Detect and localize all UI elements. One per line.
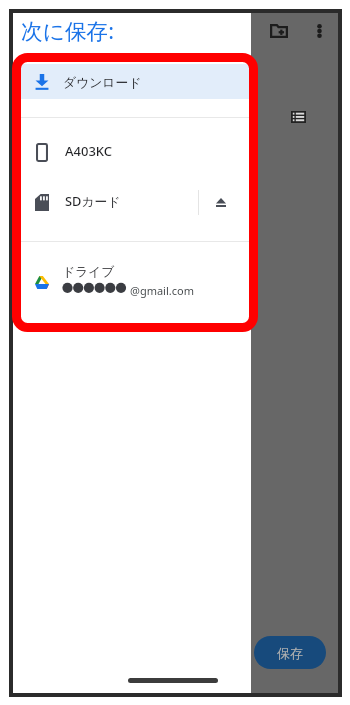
button[interactable]: ドライブ (13, 249, 251, 315)
button[interactable]: More options (306, 18, 332, 44)
staticText: @gmail.com (130, 283, 194, 298)
staticText: A403KC (65, 142, 113, 160)
button[interactable]: Eject (209, 175, 233, 229)
button[interactable]: A403KC (13, 118, 251, 186)
button[interactable]: SDカード (13, 175, 251, 229)
staticText: SDカード (65, 192, 121, 209)
staticText: ダウンロード (63, 75, 142, 91)
staticText: ドライブ (62, 264, 115, 280)
button[interactable]: List view (285, 104, 311, 130)
staticText: 保存 (277, 645, 303, 661)
button[interactable]: 保存 (254, 636, 326, 669)
button[interactable]: New folder (265, 17, 292, 44)
button[interactable]: ダウンロード (13, 64, 251, 99)
staticText: 次に保存: (21, 16, 115, 46)
